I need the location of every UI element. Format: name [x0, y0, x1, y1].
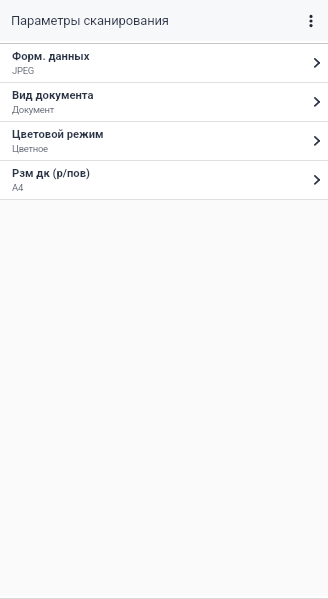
staticText: Форм. данных — [12, 50, 90, 63]
button[interactable]: Вид документа — [0, 83, 328, 121]
staticText: Документ — [12, 104, 54, 115]
staticText: A4 — [12, 182, 23, 193]
staticText: JPEG — [12, 65, 34, 76]
staticText: Вид документа — [12, 89, 94, 102]
button[interactable]: Рзм дк (р/пов) — [0, 161, 328, 199]
button[interactable]: Цветовой режим — [0, 122, 328, 160]
staticText: Цветовой режим — [12, 128, 104, 141]
button[interactable]: More options — [294, 4, 328, 38]
staticText: Цветное — [12, 143, 48, 154]
button[interactable]: Форм. данных — [0, 44, 328, 82]
staticText: Рзм дк (р/пов) — [12, 167, 90, 180]
staticText: Параметры сканирования — [11, 13, 169, 28]
